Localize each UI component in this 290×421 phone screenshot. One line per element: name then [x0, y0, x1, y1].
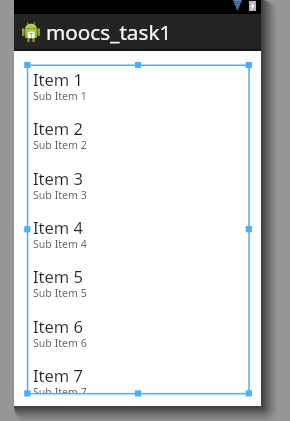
- button[interactable]: Item 6: [27, 312, 249, 361]
- other: Battery charging: [249, 1, 256, 11]
- staticText: Sub Item 6: [33, 336, 87, 350]
- button[interactable]: Item 7: [27, 361, 249, 393]
- staticText: Item 4: [33, 216, 84, 238]
- button[interactable]: Item 1: [27, 65, 249, 114]
- staticText: Item 2: [33, 117, 84, 139]
- staticText: Sub Item 2: [33, 138, 87, 152]
- staticText: Item 1: [33, 68, 84, 90]
- staticText: Sub Item 7: [33, 385, 87, 393]
- staticText: Item 3: [33, 167, 84, 189]
- staticText: Sub Item 3: [33, 188, 87, 202]
- staticText: moocs_task1: [46, 18, 172, 46]
- button[interactable]: Item 3: [27, 164, 249, 213]
- staticText: Item 6: [33, 315, 84, 337]
- staticText: Sub Item 5: [33, 286, 87, 300]
- staticText: Item 7: [33, 364, 84, 386]
- staticText: Item 5: [33, 265, 84, 287]
- staticText: Sub Item 1: [33, 89, 87, 103]
- button[interactable]: Item 4: [27, 213, 249, 262]
- button[interactable]: Item 5: [27, 262, 249, 311]
- staticText: Sub Item 4: [33, 237, 87, 251]
- button[interactable]: Item 2: [27, 114, 249, 163]
- other: Signal strength: [233, 0, 242, 11]
